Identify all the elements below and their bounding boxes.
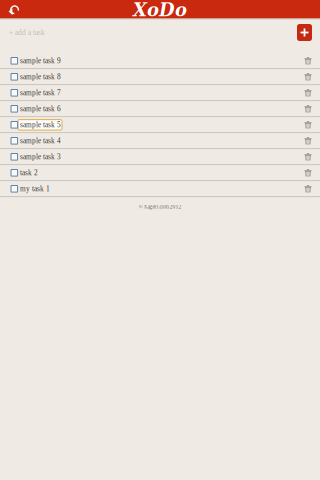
- button[interactable]: sample task 8: [0, 70, 320, 84]
- button[interactable]: sample task 5: [0, 118, 320, 132]
- staticText: my task 1: [20, 185, 50, 193]
- staticText: sample task 8: [20, 73, 61, 81]
- button[interactable]: my task 1: [0, 182, 320, 196]
- button[interactable]: task 2: [0, 166, 320, 180]
- button[interactable]: sample task 4: [0, 134, 320, 148]
- button[interactable]: sample task 9: [0, 54, 320, 68]
- button[interactable]: sample task 7: [0, 86, 320, 100]
- staticText: sample task 7: [20, 89, 61, 97]
- staticText: + add a task: [9, 28, 45, 36]
- button[interactable]: sample task 3: [0, 150, 320, 164]
- staticText: sample task 5: [20, 121, 61, 129]
- staticText: sample task 3: [20, 153, 61, 161]
- staticText: sample task 4: [20, 137, 61, 145]
- button[interactable]: Add task: [297, 24, 312, 41]
- button[interactable]: Undo: [0, 0, 28, 18]
- button[interactable]: + add a task: [0, 24, 297, 41]
- button[interactable]: sample task 6: [0, 102, 320, 116]
- staticText: sample task 6: [20, 105, 61, 113]
- staticText: task 2: [20, 169, 38, 177]
- staticText: XoDo: [133, 0, 187, 20]
- staticText: © Xagetr.com 2012: [138, 204, 181, 210]
- staticText: sample task 9: [20, 57, 61, 65]
